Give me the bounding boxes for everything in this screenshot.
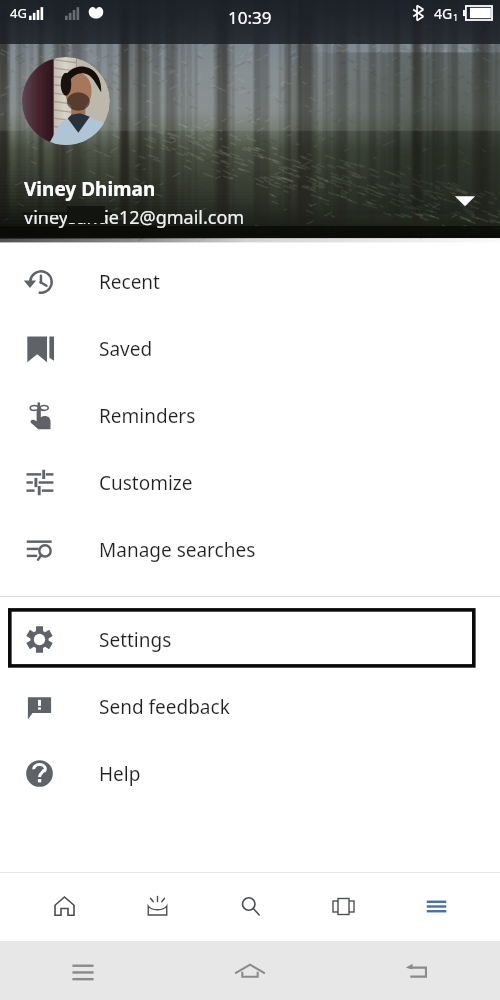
staticText: 10:39 — [228, 6, 272, 29]
button[interactable]: Help — [0, 740, 500, 807]
button[interactable]: Recent apps — [71, 959, 95, 983]
button[interactable]: Home — [17, 872, 111, 941]
staticText: 4G — [10, 4, 27, 22]
button[interactable]: Send feedback — [0, 673, 500, 740]
staticText: Reminders — [99, 403, 196, 429]
staticText: 4G — [434, 4, 453, 23]
button[interactable]: Customize — [0, 449, 500, 516]
staticText: Manage searches — [99, 537, 256, 563]
staticText: Saved — [99, 336, 153, 362]
button[interactable]: Account avatar — [22, 57, 110, 145]
button[interactable]: Settings — [0, 606, 500, 673]
staticText: Settings — [99, 627, 172, 653]
button[interactable]: Manage searches — [0, 516, 500, 583]
staticText: Recent — [99, 269, 160, 295]
staticText: Viney Dhiman — [24, 176, 156, 202]
button[interactable]: More options — [390, 872, 483, 941]
button[interactable]: Recent — [0, 248, 500, 315]
button[interactable]: Search — [204, 872, 297, 941]
staticText: 1 — [453, 11, 459, 23]
button[interactable]: Collections — [297, 872, 390, 941]
button[interactable]: Home — [234, 955, 266, 987]
button[interactable]: Back — [403, 957, 431, 985]
staticText: Customize — [99, 470, 193, 496]
button[interactable]: Reminders — [0, 382, 500, 449]
button[interactable]: Switch account — [453, 189, 477, 213]
staticText: vineysande12@gmail.com — [24, 205, 245, 230]
button[interactable]: Updates — [111, 872, 204, 941]
staticText: Send feedback — [99, 694, 230, 720]
button[interactable]: Saved — [0, 315, 500, 382]
staticText: Help — [99, 761, 141, 787]
